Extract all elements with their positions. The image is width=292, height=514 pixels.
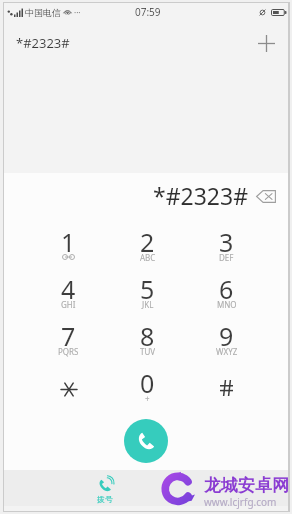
staticText: DEF <box>219 252 234 263</box>
button[interactable]: 6 <box>187 263 266 310</box>
button[interactable]: 1 <box>29 216 108 263</box>
staticText: *#2323# <box>153 180 249 211</box>
button[interactable]: 0 <box>108 357 187 404</box>
staticText: 7 <box>61 319 76 353</box>
button[interactable]: 3 <box>187 216 266 263</box>
staticText: GHI <box>61 299 76 310</box>
staticText: + <box>145 393 150 404</box>
staticText: 2 <box>140 225 155 259</box>
staticText: PQRS <box>58 346 79 357</box>
staticText: *#2323# <box>16 34 70 52</box>
button[interactable]: *#2323# <box>4 25 288 61</box>
staticText: www.lcjrfg.com <box>204 495 277 509</box>
button[interactable] <box>187 357 266 404</box>
staticText: 9 <box>219 319 234 353</box>
staticText: 拨号 <box>97 494 113 504</box>
button[interactable] <box>29 357 108 404</box>
staticText: JKL <box>142 299 154 310</box>
staticText: MNO <box>217 299 237 310</box>
staticText: 07:59 <box>135 5 161 19</box>
staticText: ABC <box>140 252 156 263</box>
staticText: 3 <box>219 225 234 259</box>
staticText: 0 <box>140 366 155 400</box>
button[interactable]: 9 <box>187 310 266 357</box>
button[interactable]: Add contact <box>248 25 284 61</box>
button[interactable]: Backspace <box>254 184 278 208</box>
staticText: 龙城安卓网 <box>204 475 289 496</box>
staticText: 中国电信 <box>25 7 61 18</box>
staticText: 5 <box>140 272 155 306</box>
staticText: 6 <box>219 272 234 306</box>
button[interactable]: Call <box>124 419 168 463</box>
staticText: 8 <box>140 319 155 353</box>
button[interactable]: 8 <box>108 310 187 357</box>
staticText: ··· <box>74 7 81 18</box>
staticText: WXYZ <box>216 346 238 357</box>
button[interactable]: 拨号 <box>77 470 133 506</box>
staticText: 4 <box>61 272 76 306</box>
button[interactable]: 5 <box>108 263 187 310</box>
button[interactable]: 7 <box>29 310 108 357</box>
button[interactable]: 2 <box>108 216 187 263</box>
staticText: TUV <box>140 346 156 357</box>
button[interactable]: 4 <box>29 263 108 310</box>
staticText: 1 <box>61 225 76 259</box>
